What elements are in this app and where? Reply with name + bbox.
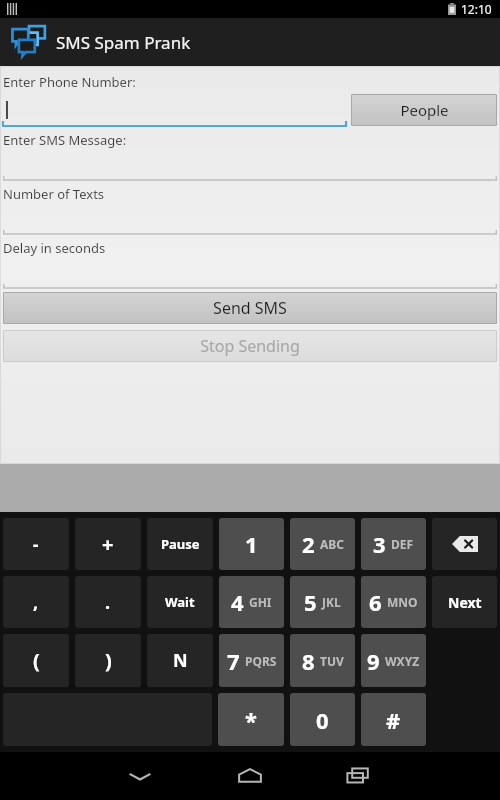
button[interactable]: Wait	[147, 576, 213, 628]
button[interactable]: 5	[290, 576, 355, 628]
staticText: #	[386, 705, 401, 735]
staticText: -	[33, 533, 39, 556]
button[interactable]: Send SMS	[3, 292, 497, 324]
staticText: 7	[227, 646, 240, 676]
staticText: WXYZ	[385, 653, 420, 669]
staticText: 8	[302, 646, 315, 676]
button[interactable]	[0, 258, 500, 290]
staticText: 5	[304, 587, 317, 617]
staticText: Enter Phone Number:	[3, 73, 136, 91]
button[interactable]	[0, 204, 500, 236]
staticText: PQRS	[245, 653, 277, 669]
button[interactable]: 8	[290, 634, 355, 687]
button[interactable]: 9	[361, 634, 426, 687]
button[interactable]: +	[75, 518, 141, 570]
staticText: ABC	[320, 536, 344, 552]
button[interactable]: 6	[361, 576, 426, 628]
button[interactable]: )	[75, 634, 141, 687]
staticText: Delay in seconds	[3, 239, 106, 257]
button[interactable]	[0, 150, 500, 182]
button[interactable]: (	[3, 634, 69, 687]
button[interactable]: Stop Sending	[3, 330, 497, 362]
button[interactable]: Next	[432, 576, 497, 628]
staticText: .	[105, 590, 111, 615]
staticText: Stop Sending	[200, 335, 300, 357]
button[interactable]: 2	[290, 518, 355, 570]
staticText: SMS Spam Prank	[56, 31, 191, 54]
staticText: Wait	[165, 593, 195, 611]
button[interactable]: N	[147, 634, 213, 687]
button[interactable]: ,	[3, 576, 69, 628]
staticText: 6	[369, 587, 382, 617]
button[interactable]: Pause	[147, 518, 213, 570]
staticText: )	[105, 647, 112, 674]
button[interactable]: People	[351, 94, 497, 126]
staticText: Number of Texts	[3, 185, 105, 203]
button[interactable]: 0	[290, 693, 355, 746]
button[interactable]	[2, 92, 347, 128]
staticText: +	[102, 531, 114, 558]
staticText: (	[33, 647, 40, 674]
button[interactable]: *	[218, 693, 284, 746]
staticText: 9	[367, 646, 380, 676]
staticText: 0	[316, 705, 329, 735]
button[interactable]: Home	[195, 752, 305, 800]
staticText: ,	[33, 590, 39, 615]
staticText: 4	[231, 587, 244, 617]
button[interactable]: #	[361, 693, 426, 746]
staticText: GHI	[249, 594, 272, 610]
staticText: Next	[448, 593, 482, 612]
staticText: Pause	[161, 535, 200, 553]
staticText: MNO	[387, 594, 418, 610]
staticText: 2	[302, 529, 315, 559]
staticText: DEF	[391, 536, 414, 552]
button[interactable]: 7	[219, 634, 284, 687]
staticText: 1	[245, 529, 258, 559]
staticText: 3	[373, 529, 386, 559]
button[interactable]: Recent apps	[305, 752, 415, 800]
staticText: JKL	[322, 594, 341, 610]
staticText: People	[400, 100, 449, 120]
button[interactable]: .	[75, 576, 141, 628]
button[interactable]: 3	[361, 518, 426, 570]
staticText: Send SMS	[213, 297, 287, 319]
staticText: Enter SMS Message:	[3, 131, 127, 149]
staticText: N	[173, 648, 188, 673]
staticText: TUV	[320, 653, 344, 669]
button[interactable]: 4	[219, 576, 284, 628]
button[interactable]: 1	[219, 518, 284, 570]
button[interactable]: Backspace	[432, 518, 497, 570]
staticText: *	[245, 705, 257, 735]
staticText: 12:10	[461, 1, 492, 17]
button[interactable]: -	[3, 518, 69, 570]
button[interactable]: Hide keyboard	[85, 752, 195, 800]
